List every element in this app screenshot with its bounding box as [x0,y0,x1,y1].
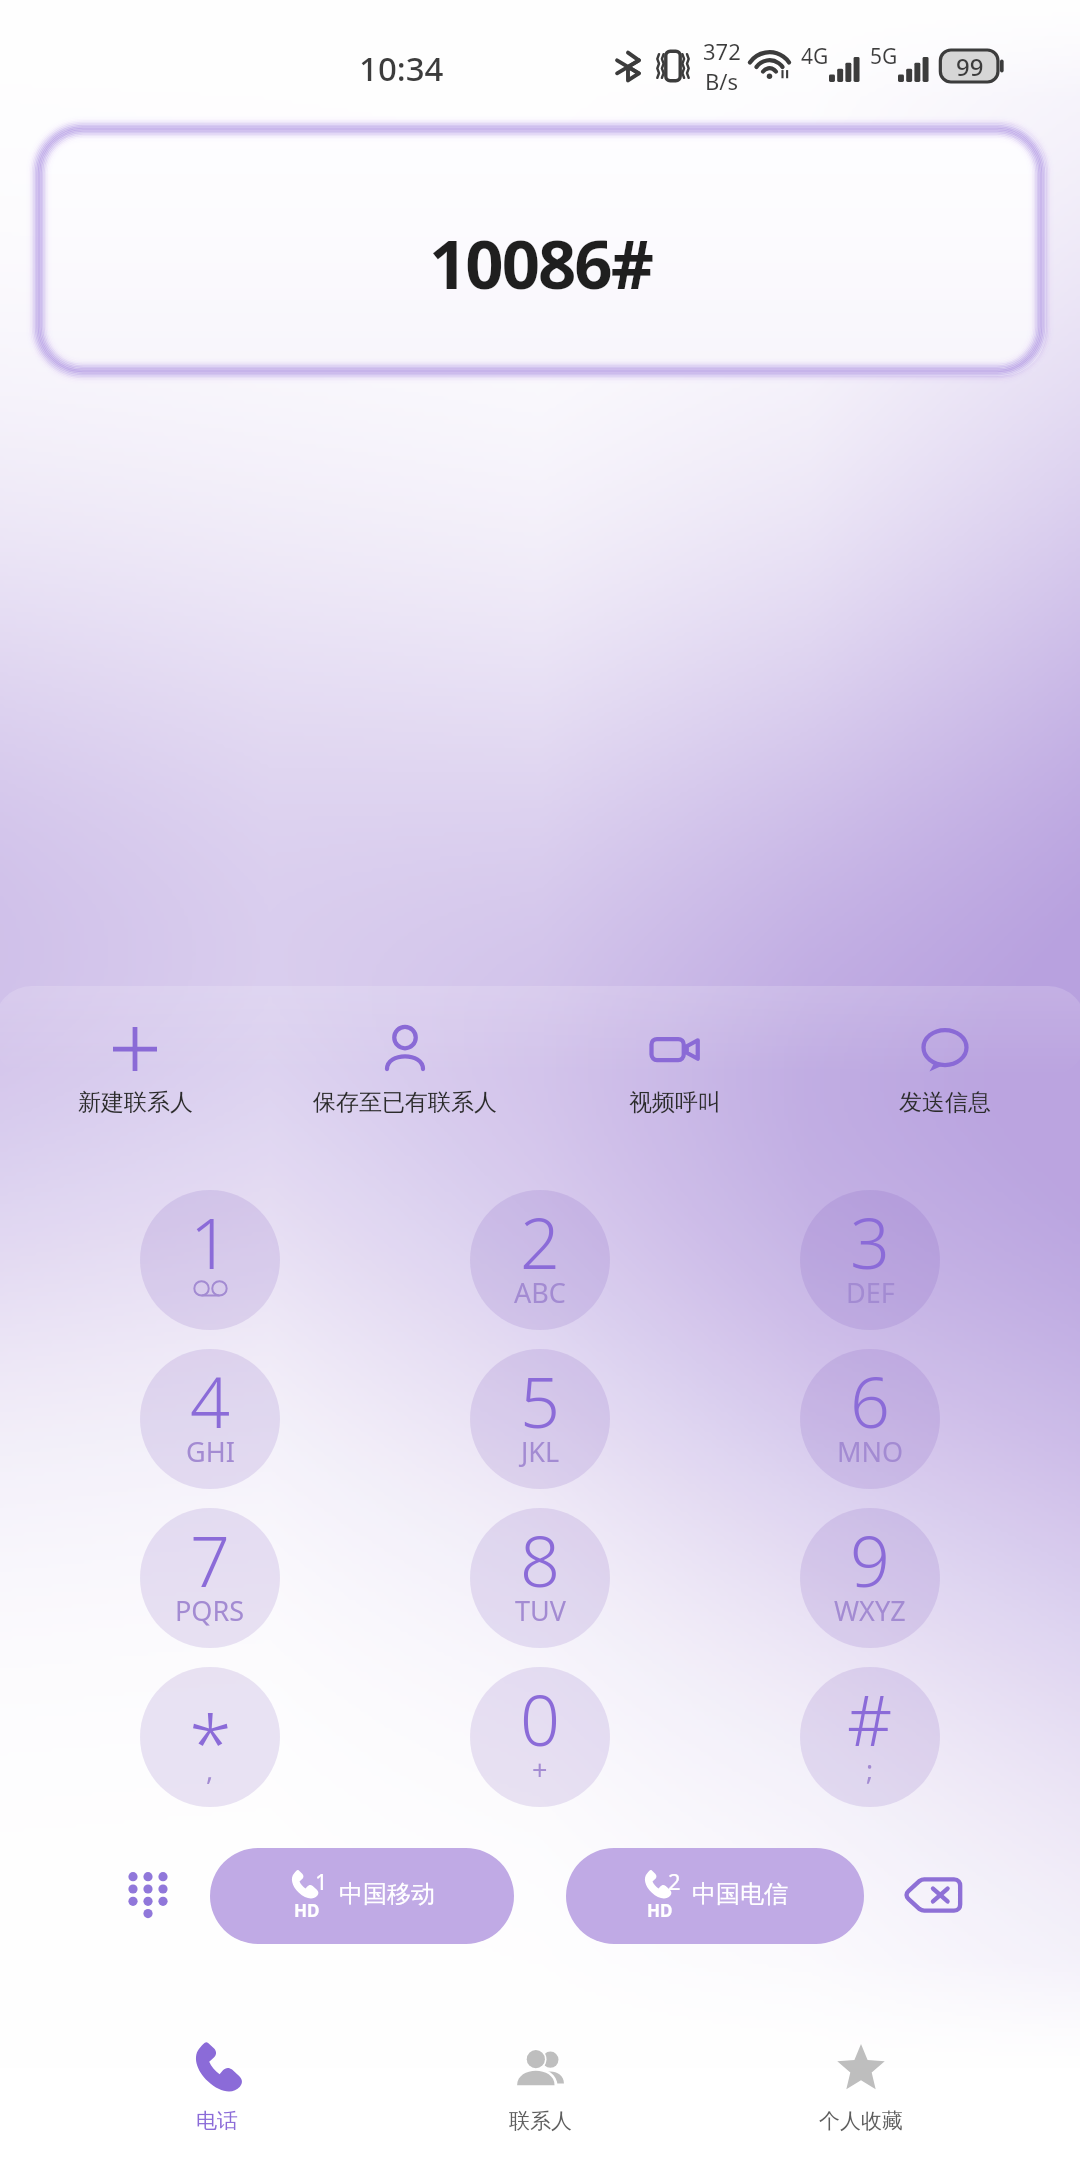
staticText: 联系人 [509,2108,572,2134]
button[interactable]: 联系人 [430,2030,650,2134]
staticText: HD [647,1899,673,1922]
staticText: 发送信息 [899,1088,991,1117]
staticText: 4G [801,42,829,71]
button[interactable]: 电话 [107,2030,327,2134]
staticText: 5G [870,42,898,71]
button[interactable]: 4 [140,1349,280,1489]
button[interactable]: 发送信息 [810,1024,1080,1117]
staticText: ABC [514,1274,566,1311]
button[interactable]: Keypad [108,1857,188,1937]
button[interactable]: * [140,1667,280,1807]
staticText: 0 [520,1671,560,1766]
button[interactable]: 9 [800,1508,940,1648]
staticText: DEF [846,1274,895,1311]
button[interactable]: 新建联系人 [0,1024,270,1117]
button[interactable]: 2 [470,1190,610,1330]
staticText: WXYZ [834,1592,906,1629]
button[interactable]: 1 [210,1848,514,1944]
staticText: 个人收藏 [819,2108,903,2134]
staticText: 9 [850,1512,890,1607]
button[interactable]: 2 [566,1848,864,1944]
staticText: + [532,1751,548,1788]
staticText: 中国移动 [339,1879,435,1909]
staticText: 6 [850,1353,890,1448]
staticText: B/s [705,66,739,96]
button[interactable]: 视频呼叫 [540,1024,810,1117]
staticText: 保存至已有联系人 [313,1088,497,1117]
staticText: 视频呼叫 [629,1088,721,1117]
staticText: 1 [315,1866,328,1896]
staticText: 2 [668,1866,681,1896]
staticText: 7 [190,1512,230,1607]
staticText: 新建联系人 [78,1088,193,1117]
button[interactable]: 保存至已有联系人 [270,1024,540,1117]
button[interactable]: 5 [470,1349,610,1489]
button[interactable]: # [800,1667,940,1807]
staticText: TUV [515,1592,566,1629]
button[interactable]: 7 [140,1508,280,1648]
staticText: # [847,1671,893,1766]
button[interactable]: 3 [800,1190,940,1330]
staticText: 1 [190,1194,230,1289]
button[interactable]: 8 [470,1508,610,1648]
staticText: 99 [956,50,984,82]
staticText: 2 [520,1194,560,1289]
staticText: GHI [186,1433,235,1470]
button[interactable]: 10086# [34,124,1046,376]
staticText: 372 [703,36,741,66]
button[interactable]: Delete [893,1855,973,1935]
staticText: 4 [190,1353,230,1448]
staticText: ; [866,1751,874,1788]
staticText: 10086# [429,217,652,308]
button[interactable]: 6 [800,1349,940,1489]
staticText: 电话 [196,2108,238,2134]
staticText: 3 [850,1194,890,1289]
button[interactable]: 个人收藏 [751,2030,971,2134]
staticText: MNO [837,1433,904,1470]
staticText: , [206,1751,214,1788]
button[interactable]: 1 [140,1190,280,1330]
staticText: PQRS [175,1592,245,1629]
staticText: HD [294,1899,320,1922]
button[interactable]: 0 [470,1667,610,1807]
staticText: 10:34 [359,46,444,91]
staticText: * [189,1689,232,1795]
staticText: 5 [520,1353,560,1448]
staticText: 中国电信 [692,1879,788,1909]
staticText: 8 [520,1512,560,1607]
staticText: JKL [521,1433,560,1470]
